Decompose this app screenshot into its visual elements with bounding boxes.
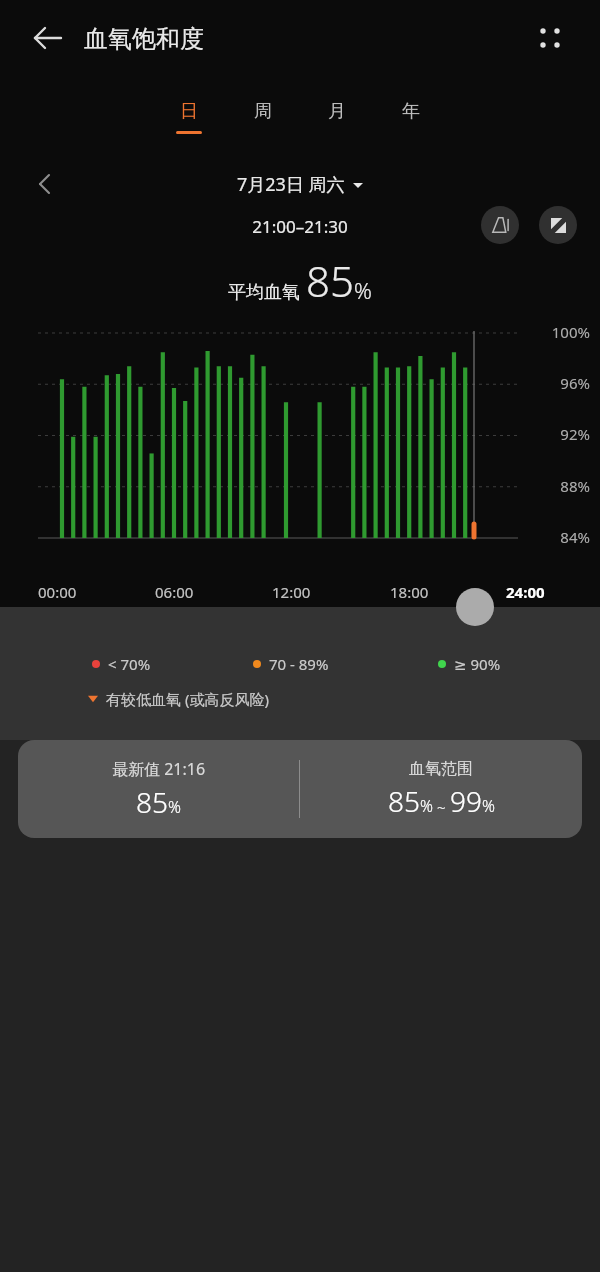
staticText: 06:00 <box>155 582 194 602</box>
button[interactable]: More options <box>528 16 572 60</box>
staticText: 70 - 89% <box>269 654 329 674</box>
button[interactable]: 最新值 21:16 <box>18 740 582 838</box>
staticText: 85 <box>388 782 420 820</box>
staticText: % <box>354 275 372 305</box>
staticText: 平均血氧 <box>228 281 300 304</box>
staticText: 有较低血氧 (或高反风险) <box>106 689 269 709</box>
staticText: ~ <box>433 797 450 817</box>
staticText: 96% <box>0 373 590 393</box>
staticText: 21:00–21:30 <box>0 215 600 238</box>
button[interactable]: Previous day <box>26 165 64 203</box>
staticText: % <box>168 796 181 818</box>
staticText: < 70% <box>108 654 151 674</box>
staticText: 24:00 <box>506 582 545 602</box>
staticText: 血氧饱和度 <box>84 24 204 54</box>
staticText: 月 <box>328 100 346 123</box>
staticText: ≥ 90% <box>454 654 501 674</box>
button[interactable]: Back <box>26 16 70 60</box>
staticText: 00:00 <box>38 582 77 602</box>
staticText: 7月23日 周六 <box>237 172 345 197</box>
staticText: 最新值 21:16 <box>112 758 206 780</box>
button[interactable]: 月 <box>300 100 374 142</box>
staticText: 92% <box>0 424 590 444</box>
button[interactable]: Measure now <box>481 206 519 244</box>
button[interactable]: 日 <box>152 100 226 142</box>
staticText: 85 <box>306 252 354 309</box>
staticText: 99 <box>450 782 482 820</box>
staticText: 100% <box>0 322 590 342</box>
staticText: 85 <box>136 783 168 821</box>
staticText: 血氧范围 <box>409 759 473 779</box>
staticText: % <box>482 795 495 817</box>
staticText: 84% <box>0 527 590 547</box>
staticText: % <box>420 795 433 817</box>
staticText: 日 <box>180 100 198 123</box>
button[interactable]: 年 <box>374 100 448 142</box>
staticText: 12:00 <box>272 582 311 602</box>
button[interactable]: 周 <box>226 100 300 142</box>
button[interactable]: Fullscreen chart <box>539 206 577 244</box>
staticText: 88% <box>0 476 590 496</box>
staticText: 18:00 <box>390 582 429 602</box>
staticText: 年 <box>402 100 420 123</box>
staticText: 周 <box>254 100 272 123</box>
